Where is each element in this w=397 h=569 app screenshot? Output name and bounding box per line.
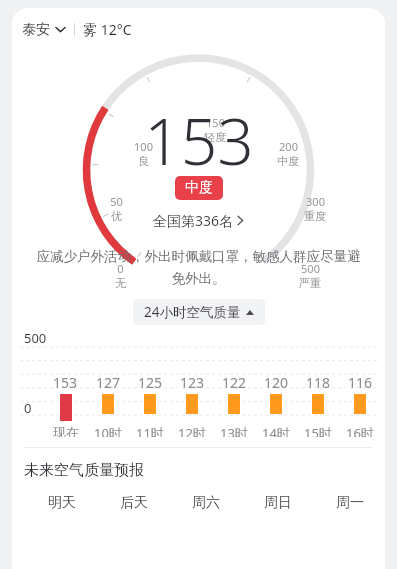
staticText: 雾 12°C — [83, 20, 132, 39]
staticText: 泰安 — [22, 21, 50, 39]
staticText: 中度 — [277, 154, 299, 168]
staticText: 300 — [306, 194, 325, 209]
staticText: 500 — [301, 261, 320, 276]
staticText: 周日 — [264, 494, 292, 512]
staticText: 153 — [144, 97, 254, 184]
button[interactable]: 周一 — [314, 494, 385, 512]
button[interactable]: 120 — [255, 333, 297, 437]
staticText: 良 — [138, 154, 149, 168]
button[interactable]: 123 — [171, 333, 213, 437]
staticText: 现在 — [53, 424, 79, 437]
staticText: 118 — [306, 373, 331, 392]
button[interactable]: 116 — [339, 333, 381, 437]
staticText: 150 — [206, 115, 225, 130]
staticText: 后天 — [120, 494, 148, 512]
staticText: 未来空气质量预报 — [24, 461, 144, 480]
staticText: 0 — [24, 399, 32, 417]
staticText: 中度 — [185, 179, 213, 197]
button[interactable]: 153 — [44, 333, 87, 437]
staticText: 127 — [96, 373, 121, 392]
staticText: 应减少户外活动，外出时佩戴口罩，敏感人群应尽量避免外出。 — [34, 248, 363, 287]
staticText: 周一 — [336, 494, 364, 512]
staticText: 125 — [138, 373, 163, 392]
staticText: 轻度 — [204, 130, 226, 144]
staticText: 12时 — [178, 424, 206, 437]
staticText: 周六 — [192, 494, 220, 512]
button[interactable]: 24小时空气质量 — [133, 299, 265, 325]
staticText: 24小时空气质量 — [144, 303, 241, 321]
staticText: 11时 — [136, 424, 164, 437]
button[interactable]: 泰安 — [22, 20, 132, 39]
staticText: 500 — [24, 329, 47, 347]
button[interactable]: 中度 — [175, 176, 223, 200]
button[interactable]: 周日 — [242, 494, 314, 512]
staticText: 14时 — [262, 424, 290, 437]
staticText: 全国第336名 — [153, 211, 234, 230]
staticText: 122 — [222, 373, 247, 392]
button[interactable]: 周六 — [170, 494, 242, 512]
staticText: 10时 — [94, 424, 122, 437]
staticText: 严重 — [299, 276, 321, 290]
staticText: 116 — [348, 373, 373, 392]
button[interactable]: 122 — [213, 333, 255, 437]
staticText: 13时 — [220, 424, 248, 437]
staticText: 16时 — [346, 424, 374, 437]
staticText: 明天 — [48, 494, 76, 512]
staticText: 15时 — [304, 424, 332, 437]
staticText: 重度 — [304, 209, 326, 223]
staticText: 0 — [117, 261, 124, 276]
staticText: 无 — [115, 276, 126, 290]
button[interactable]: 明天 — [26, 494, 98, 512]
staticText: 120 — [264, 373, 289, 392]
staticText: 50 — [110, 194, 123, 209]
button[interactable]: 125 — [129, 333, 171, 437]
staticText: 123 — [180, 373, 205, 392]
button[interactable]: 全国第336名 — [147, 209, 250, 232]
staticText: 153 — [53, 373, 78, 392]
button[interactable]: 118 — [297, 333, 339, 437]
staticText: 200 — [279, 139, 298, 154]
button[interactable]: 127 — [87, 333, 129, 437]
staticText: 100 — [134, 139, 153, 154]
staticText: 优 — [111, 209, 122, 223]
button[interactable]: 后天 — [98, 494, 170, 512]
